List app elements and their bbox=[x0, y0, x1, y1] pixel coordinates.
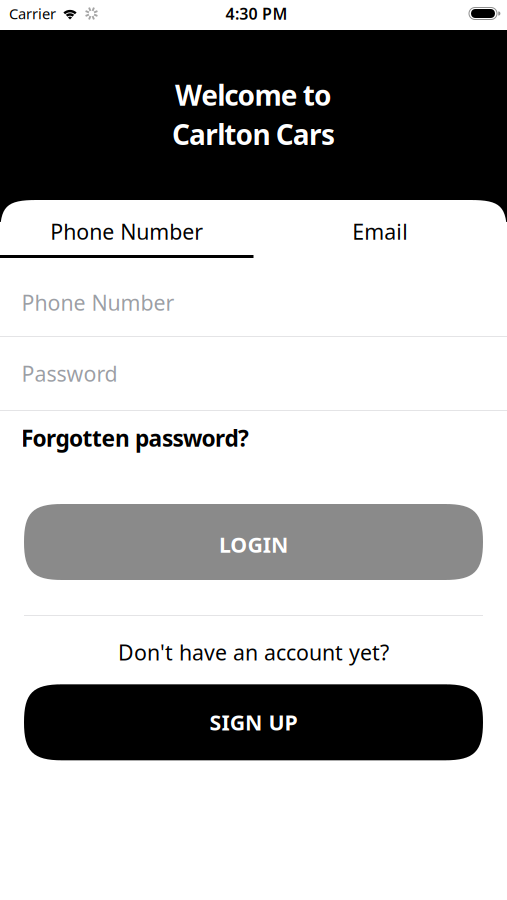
staticText: Don't have an account yet? bbox=[118, 638, 389, 666]
staticText: Forgotten password? bbox=[21, 423, 249, 453]
staticText: Carrier bbox=[9, 4, 56, 23]
button[interactable]: Password bbox=[0, 337, 507, 410]
button[interactable]: Email bbox=[253, 200, 507, 255]
button[interactable]: Forgotten password? bbox=[0, 411, 507, 465]
staticText: SIGN UP bbox=[209, 708, 298, 736]
button[interactable]: Phone Number bbox=[0, 200, 253, 255]
staticText: Welcome to bbox=[175, 76, 332, 113]
staticText: Carlton Cars bbox=[172, 115, 335, 153]
staticText: 4:30 PM bbox=[226, 3, 287, 24]
staticText: Email bbox=[352, 217, 408, 246]
staticText: Phone Number bbox=[21, 288, 174, 317]
staticText: Password bbox=[21, 359, 117, 388]
staticText: LOGIN bbox=[219, 530, 288, 559]
staticText: Phone Number bbox=[50, 217, 203, 246]
button[interactable]: LOGIN bbox=[24, 504, 483, 580]
button[interactable]: SIGN UP bbox=[24, 684, 483, 760]
button[interactable]: Phone Number bbox=[0, 258, 507, 336]
